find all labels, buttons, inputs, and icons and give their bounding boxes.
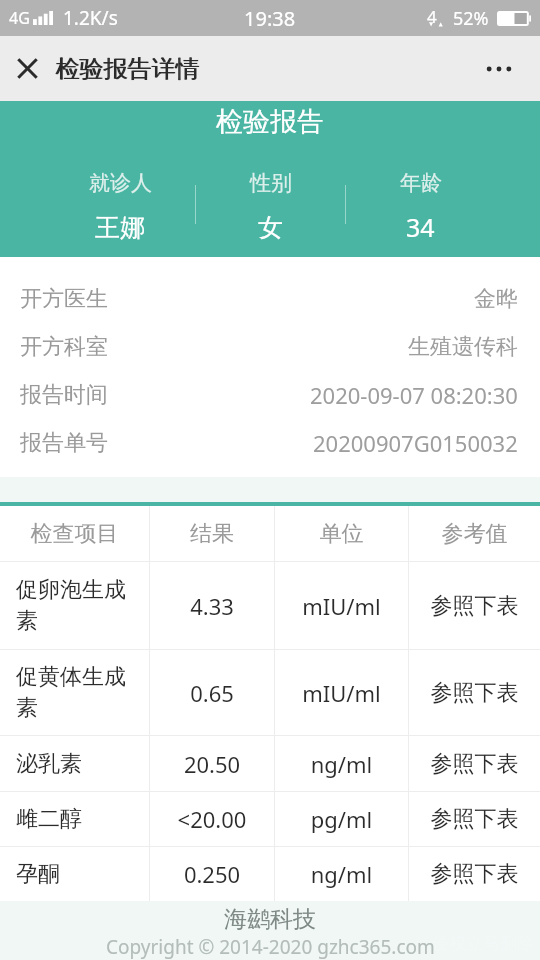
staticText: 检查项目: [0, 520, 149, 548]
staticText: 参照下表: [409, 592, 540, 620]
staticText: 促卵泡生成素: [16, 576, 141, 635]
staticText: 促黄体生成素: [16, 663, 141, 722]
staticText: 海鹚科技: [224, 905, 316, 934]
staticText: 4G: [9, 7, 30, 29]
staticText: 性别: [250, 170, 292, 196]
staticText: 0.65: [150, 678, 274, 708]
staticText: 参照下表: [409, 860, 540, 888]
staticText: 参考值: [409, 520, 540, 548]
staticText: 4.33: [150, 591, 274, 621]
staticText: 生殖遗传科: [408, 333, 518, 361]
staticText: 0.250: [150, 859, 274, 889]
staticText: 金晔: [474, 285, 518, 313]
staticText: 侵权立马删除: [432, 933, 534, 954]
staticText: 34: [406, 210, 435, 244]
staticText: 报告时间: [20, 381, 108, 409]
staticText: 年龄: [400, 170, 442, 196]
staticText: 雌二醇: [16, 805, 141, 833]
staticText: mIU/ml: [275, 678, 408, 708]
staticText: 检验报告详情: [56, 54, 200, 84]
staticText: 就诊人: [89, 170, 152, 196]
staticText: 20.50: [150, 749, 274, 779]
staticText: Copyright © 2014-2020 gzhc365.com: [106, 934, 435, 960]
staticText: 20200907G0150032: [313, 428, 518, 458]
staticText: 结果: [150, 520, 274, 548]
staticText: 参照下表: [409, 679, 540, 707]
staticText: 检验报告: [216, 105, 324, 139]
staticText: ng/ml: [275, 749, 408, 779]
staticText: 19:38: [244, 5, 296, 32]
button[interactable]: Close: [0, 36, 55, 101]
staticText: 单位: [275, 520, 408, 548]
staticText: 王娜: [95, 212, 145, 243]
staticText: 参照下表: [409, 805, 540, 833]
staticText: 4G: [427, 5, 447, 29]
staticText: 1.2K/s: [63, 5, 118, 31]
staticText: <20.00: [150, 804, 274, 834]
button[interactable]: More options: [476, 36, 540, 101]
staticText: 女: [258, 212, 283, 243]
staticText: 2020-09-07 08:20:30: [310, 380, 518, 410]
staticText: ng/ml: [275, 859, 408, 889]
staticText: 孕酮: [16, 860, 141, 888]
staticText: 52%: [453, 6, 489, 31]
staticText: 参照下表: [409, 750, 540, 778]
staticText: 泌乳素: [16, 750, 141, 778]
staticText: mIU/ml: [275, 591, 408, 621]
staticText: 开方科室: [20, 333, 108, 361]
staticText: pg/ml: [275, 804, 408, 834]
staticText: 报告单号: [20, 429, 108, 457]
staticText: 开方医生: [20, 285, 108, 313]
staticText: 检验报告详情: [55, 54, 199, 84]
